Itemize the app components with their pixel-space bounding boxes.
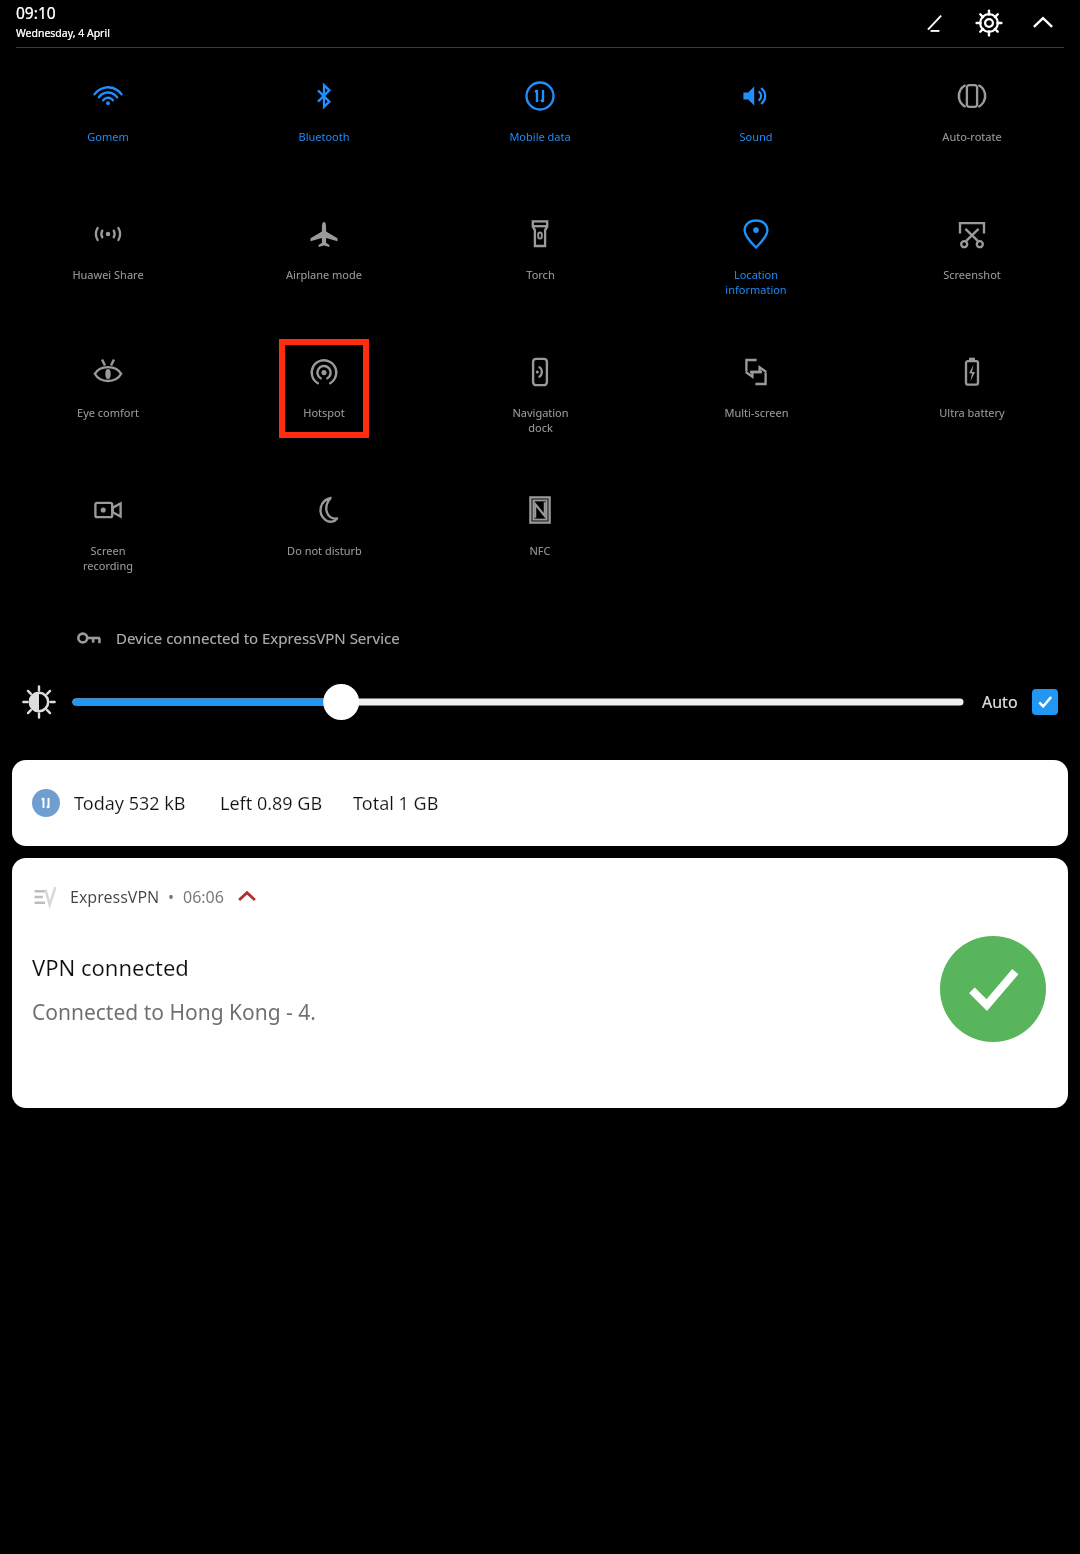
staticText: Screen recording — [83, 543, 133, 573]
staticText: VPN connected — [32, 952, 189, 982]
button[interactable]: Bluetooth — [216, 60, 432, 198]
button[interactable]: Edit — [918, 6, 952, 40]
staticText: Wednesday, 4 April — [16, 26, 110, 40]
button[interactable]: Settings — [972, 6, 1006, 40]
button[interactable]: Huawei Share — [0, 198, 216, 336]
staticText: Device connected to ExpressVPN Service — [116, 628, 400, 648]
staticText: Sound — [739, 129, 773, 144]
button[interactable]: Multi-screen — [648, 336, 864, 474]
staticText: Huawei Share — [72, 267, 144, 282]
staticText: 06:06 — [183, 886, 224, 908]
staticText: Gomem — [87, 129, 129, 144]
staticText: Screenshot — [943, 267, 1001, 282]
button[interactable]: Torch — [432, 198, 648, 336]
button[interactable]: Screenshot — [864, 198, 1080, 336]
staticText: Multi-screen — [724, 405, 789, 420]
button[interactable]: Device connected to ExpressVPN Service — [0, 610, 1080, 666]
staticText: Left 0.89 GB — [220, 791, 323, 816]
button[interactable]: Gomem — [0, 60, 216, 198]
staticText: • — [168, 886, 175, 908]
button[interactable]: NFC — [432, 474, 648, 610]
button[interactable]: Airplane mode — [216, 198, 432, 336]
staticText: Eye comfort — [77, 405, 139, 420]
staticText: ExpressVPN — [70, 886, 160, 908]
button[interactable]: Sound — [648, 60, 864, 198]
button[interactable]: Location information — [648, 198, 864, 336]
staticText: Airplane mode — [286, 267, 362, 282]
staticText: NFC — [529, 543, 551, 558]
button[interactable]: Mobile data — [432, 60, 648, 198]
button[interactable]: Do not disturb — [216, 474, 432, 610]
staticText: Connected to Hong Kong - 4. — [32, 998, 316, 1027]
button[interactable]: Hotspot — [216, 336, 432, 474]
button[interactable]: Screen recording — [0, 474, 216, 610]
button[interactable]: Auto-rotate — [864, 60, 1080, 198]
button[interactable]: ExpressVPN — [12, 858, 1068, 1108]
staticText: Hotspot — [303, 405, 345, 420]
staticText: Torch — [526, 267, 555, 282]
staticText: Do not disturb — [287, 543, 362, 558]
button[interactable]: Eye comfort — [0, 336, 216, 474]
button[interactable]: Navigation dock — [432, 336, 648, 474]
staticText: 09:10 — [16, 2, 56, 23]
staticText: Total 1 GB — [353, 791, 439, 816]
staticText: Bluetooth — [298, 129, 350, 144]
staticText: Mobile data — [509, 129, 571, 144]
button[interactable]: Collapse — [1026, 6, 1060, 40]
button[interactable]: Today 532 kB — [12, 760, 1068, 846]
staticText: Auto-rotate — [942, 129, 1002, 144]
staticText: Today 532 kB — [74, 791, 186, 816]
button[interactable]: Ultra battery — [864, 336, 1080, 474]
staticText: Location information — [725, 267, 787, 297]
button[interactable]: Auto — [982, 689, 1058, 715]
button[interactable] — [76, 682, 960, 722]
staticText: Ultra battery — [939, 405, 1005, 420]
staticText: Navigation dock — [512, 405, 569, 435]
staticText: Auto — [982, 691, 1018, 713]
